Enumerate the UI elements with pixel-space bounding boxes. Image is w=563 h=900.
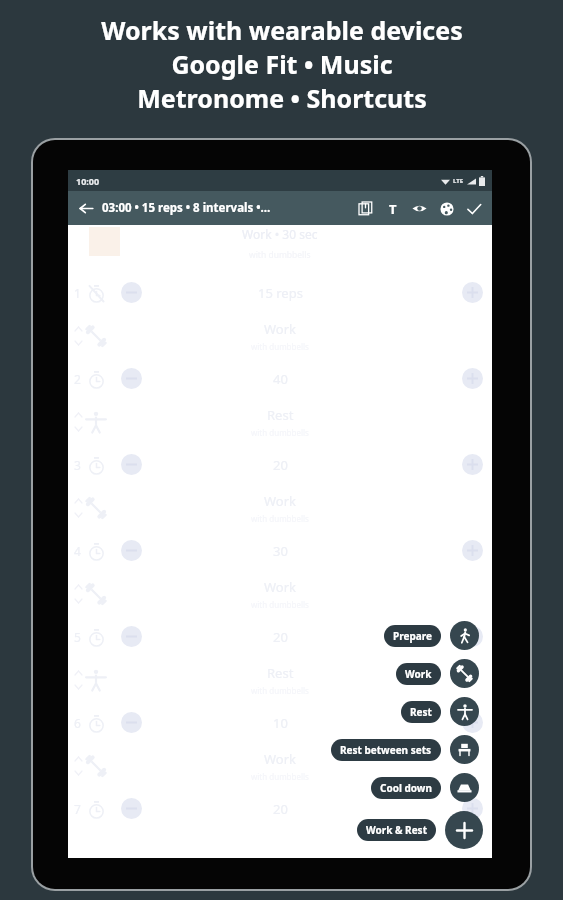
button[interactable]: Work bbox=[396, 663, 441, 685]
staticText: 7 bbox=[74, 801, 81, 817]
staticText: 15 reps bbox=[258, 284, 303, 302]
staticText: Work • 30 sec bbox=[242, 226, 318, 242]
button[interactable]: Prepare bbox=[450, 621, 479, 650]
button[interactable]: Increase bbox=[462, 368, 483, 389]
button[interactable]: Increase bbox=[462, 454, 483, 475]
button[interactable]: Increase bbox=[462, 540, 483, 561]
button[interactable]: 7 bbox=[68, 787, 492, 830]
staticText: with dumbbells bbox=[251, 427, 309, 438]
staticText: Cool down bbox=[380, 781, 432, 795]
button[interactable]: 4 bbox=[68, 529, 492, 572]
staticText: 1 bbox=[74, 285, 81, 301]
button[interactable]: Text size bbox=[379, 195, 406, 222]
staticText: 3 bbox=[74, 457, 81, 473]
button[interactable]: Work & Rest bbox=[357, 819, 436, 841]
staticText: 20 bbox=[273, 628, 288, 646]
button[interactable]: Decrease bbox=[121, 454, 142, 475]
button[interactable]: Decrease bbox=[121, 626, 142, 647]
button[interactable]: Cool down bbox=[371, 777, 441, 799]
button[interactable]: Increase bbox=[462, 626, 483, 647]
button[interactable]: Work bbox=[450, 659, 479, 688]
staticText: Rest bbox=[267, 406, 294, 424]
button[interactable]: Theme bbox=[433, 195, 460, 222]
staticText: 30 bbox=[273, 542, 288, 560]
staticText: 10 bbox=[273, 714, 288, 732]
button[interactable]: Back bbox=[73, 195, 99, 221]
staticText: Work bbox=[264, 578, 297, 596]
button[interactable]: 5 bbox=[68, 615, 492, 658]
button[interactable]: Rest bbox=[401, 701, 441, 723]
staticText: 20 bbox=[273, 456, 288, 474]
button[interactable]: Rest bbox=[450, 697, 479, 726]
staticText: Works with wearable devices bbox=[101, 13, 463, 47]
button[interactable]: Rest between sets bbox=[450, 735, 479, 764]
button[interactable]: Save bbox=[460, 195, 487, 222]
button[interactable]: Cool down bbox=[450, 773, 479, 802]
staticText: with dumbbells bbox=[251, 513, 309, 524]
staticText: Metronome • Shortcuts bbox=[137, 81, 427, 115]
staticText: 6 bbox=[74, 715, 81, 731]
staticText: Work bbox=[264, 320, 297, 338]
button[interactable]: 2 bbox=[68, 357, 492, 400]
button[interactable]: Increase bbox=[462, 712, 483, 733]
button[interactable]: Rest bbox=[68, 658, 492, 701]
staticText: with dumbbells bbox=[251, 771, 309, 782]
staticText: 5 bbox=[74, 629, 81, 645]
staticText: Rest between sets bbox=[340, 743, 432, 757]
staticText: Work bbox=[264, 750, 297, 768]
button[interactable]: 6 bbox=[68, 701, 492, 744]
button[interactable]: Add interval bbox=[445, 811, 483, 849]
staticText: T bbox=[389, 200, 397, 218]
button[interactable]: 1 bbox=[68, 271, 492, 314]
staticText: Rest bbox=[410, 705, 432, 719]
staticText: LTE bbox=[453, 177, 464, 185]
button[interactable]: Decrease bbox=[121, 540, 142, 561]
button[interactable]: Duplicate bbox=[352, 195, 379, 222]
button[interactable]: 3 bbox=[68, 443, 492, 486]
button[interactable]: Increase bbox=[462, 282, 483, 303]
staticText: 03:00 • 15 reps • 8 intervals •… bbox=[102, 200, 352, 216]
staticText: with dumbbells bbox=[249, 249, 311, 261]
staticText: 2 bbox=[74, 371, 81, 387]
staticText: Work bbox=[405, 667, 432, 681]
button[interactable]: Prepare bbox=[384, 625, 441, 647]
staticText: with dumbbells bbox=[251, 685, 309, 696]
staticText: Prepare bbox=[393, 629, 432, 643]
button[interactable]: Decrease bbox=[121, 282, 142, 303]
staticText: 10:00 bbox=[76, 175, 100, 187]
button[interactable]: Work bbox=[68, 744, 492, 787]
staticText: Work & Rest bbox=[366, 823, 427, 837]
button[interactable]: Rest between sets bbox=[331, 739, 441, 761]
staticText: 40 bbox=[273, 370, 288, 388]
staticText: Work bbox=[264, 492, 297, 510]
button[interactable]: Preview bbox=[406, 195, 433, 222]
button[interactable]: Increase bbox=[462, 798, 483, 819]
button[interactable]: Decrease bbox=[121, 368, 142, 389]
staticText: Rest bbox=[267, 664, 294, 682]
staticText: with dumbbells bbox=[251, 341, 309, 352]
staticText: 4 bbox=[74, 543, 81, 559]
staticText: Google Fit • Music bbox=[171, 47, 393, 81]
staticText: with dumbbells bbox=[251, 599, 309, 610]
button[interactable]: Decrease bbox=[121, 798, 142, 819]
button[interactable]: Decrease bbox=[121, 712, 142, 733]
staticText: 20 bbox=[273, 800, 288, 818]
